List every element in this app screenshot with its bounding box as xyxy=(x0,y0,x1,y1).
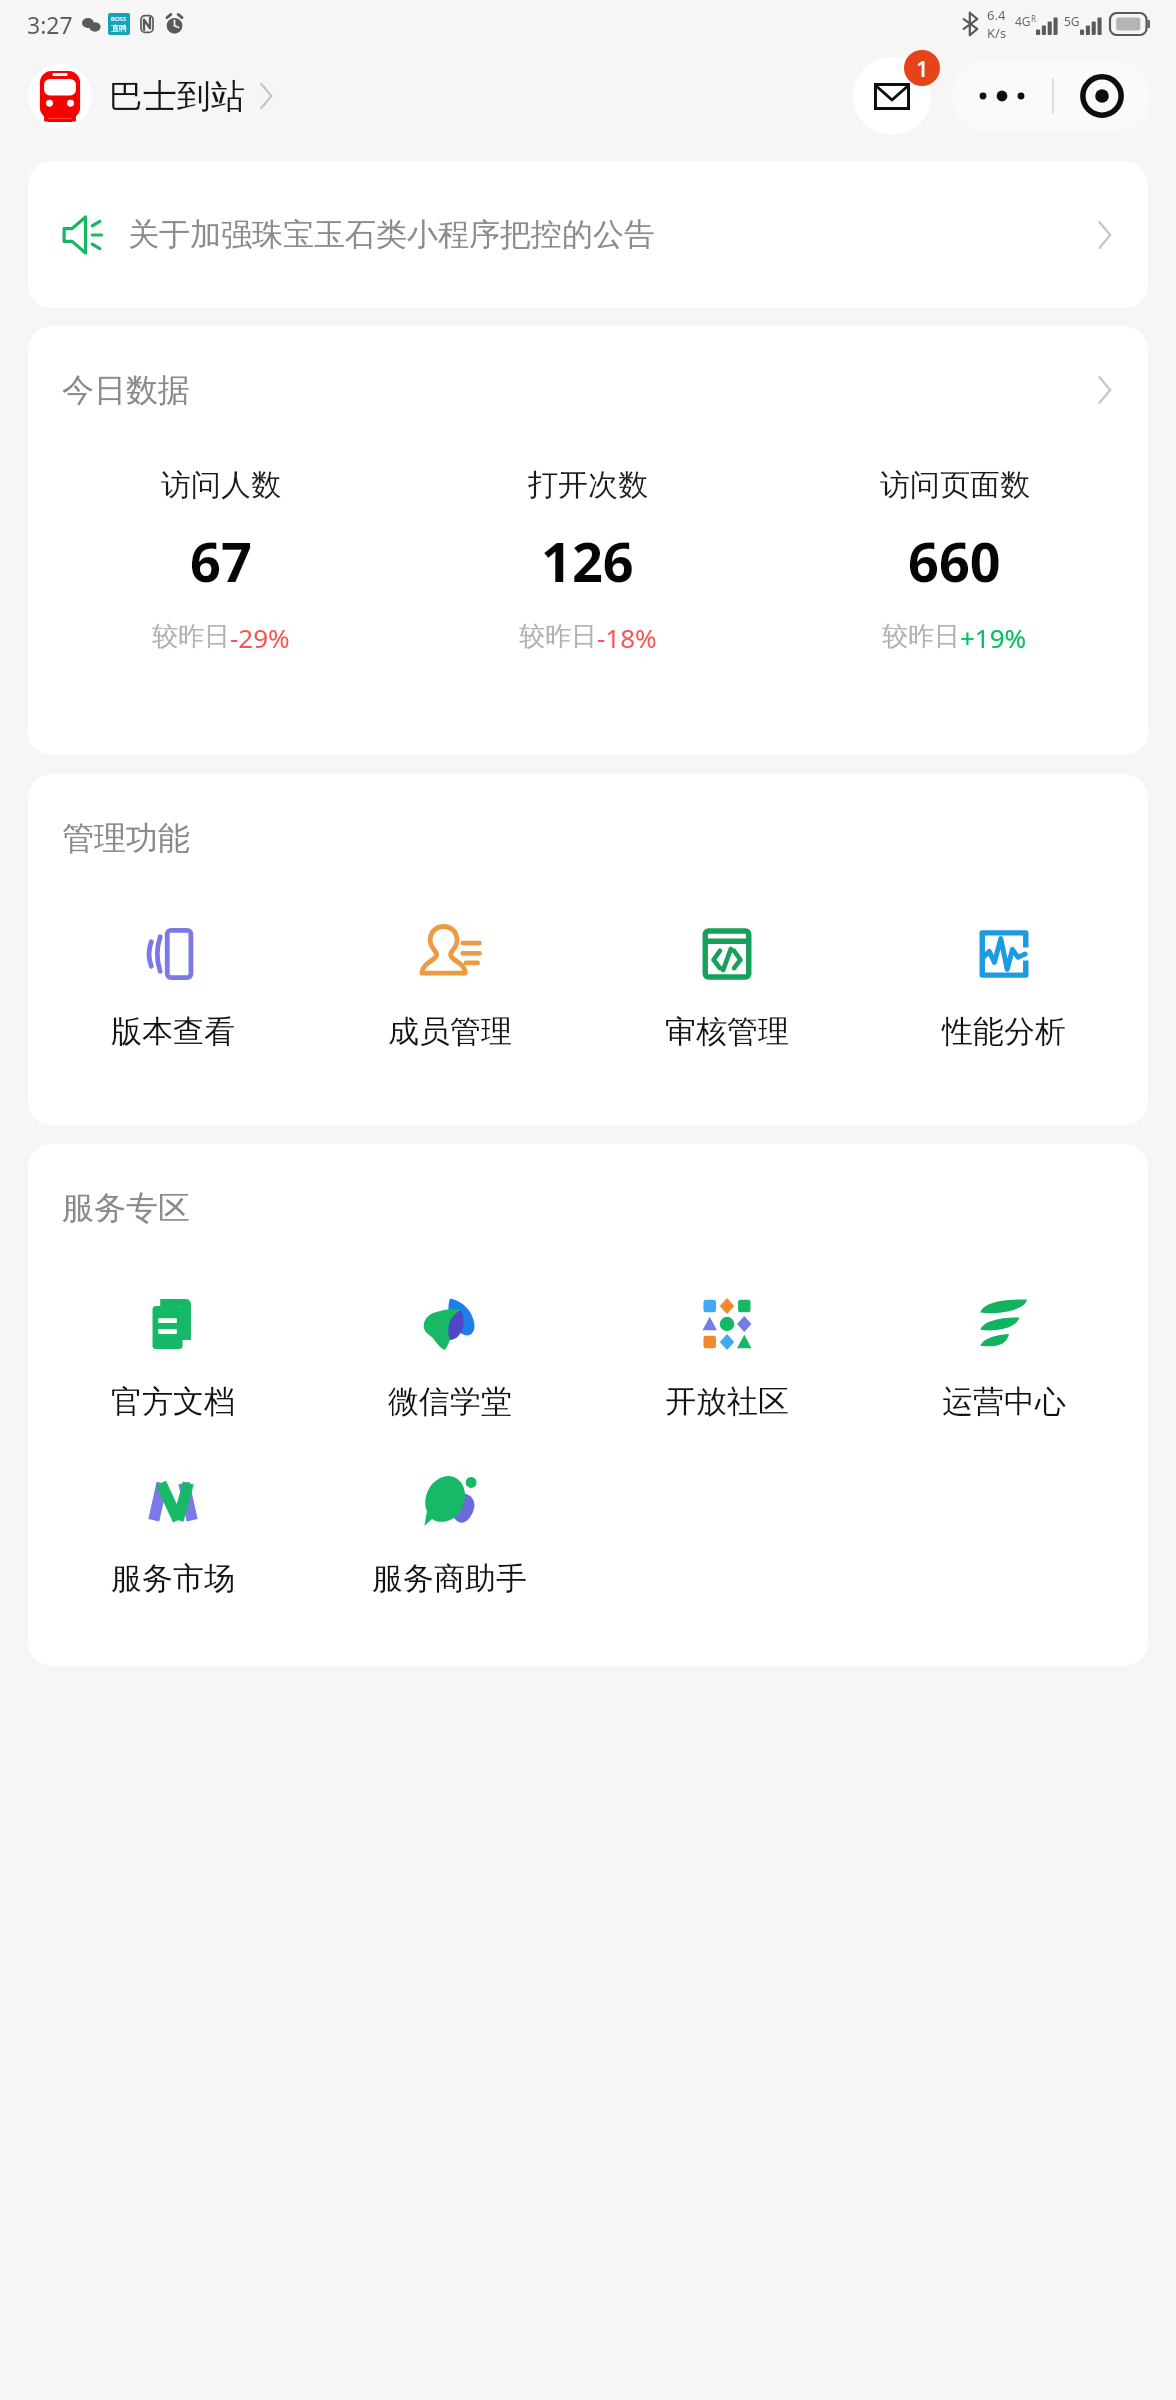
staticText: 成员管理 xyxy=(388,1012,512,1051)
staticText: 直聘 xyxy=(111,23,127,33)
button[interactable]: 性能分析 xyxy=(865,918,1142,1055)
staticText: +19% xyxy=(960,620,1027,655)
button[interactable]: 运营中心 xyxy=(865,1288,1142,1425)
staticText: 3:27 xyxy=(27,9,73,40)
staticText: 巴士到站 xyxy=(109,75,245,118)
staticText: 较昨日 xyxy=(519,620,597,653)
button[interactable]: 访问页面数 xyxy=(771,466,1138,655)
staticText: -18% xyxy=(597,620,657,655)
staticText: 关于加强珠宝玉石类小程序把控的公告 xyxy=(128,215,655,254)
staticText: K/s xyxy=(987,24,1007,42)
staticText: 660 xyxy=(908,524,1001,598)
staticText: 6.4 xyxy=(987,6,1006,24)
button[interactable]: 官方文档 xyxy=(34,1288,311,1425)
staticText: 审核管理 xyxy=(665,1012,789,1051)
staticText: 打开次数 xyxy=(528,466,648,504)
button[interactable]: 微信学堂 xyxy=(311,1288,588,1425)
staticText: 访问人数 xyxy=(161,466,281,504)
button[interactable]: 打开次数 xyxy=(404,466,771,655)
staticText: 126 xyxy=(541,524,634,598)
staticText: 67 xyxy=(190,524,252,598)
staticText: BOSS xyxy=(111,15,127,23)
staticText: 较昨日 xyxy=(882,620,960,653)
staticText: 性能分析 xyxy=(942,1012,1066,1051)
staticText: 今日数据 xyxy=(62,370,190,410)
staticText: 官方文档 xyxy=(111,1382,235,1421)
staticText: 5G xyxy=(1064,13,1080,29)
button[interactable]: 开放社区 xyxy=(588,1288,865,1425)
staticText: 微信学堂 xyxy=(388,1382,512,1421)
staticText: -29% xyxy=(230,620,290,655)
button[interactable]: Close mini program xyxy=(1054,61,1150,131)
staticText: 管理功能 xyxy=(62,818,190,858)
button[interactable]: 今日数据 xyxy=(28,326,1148,422)
staticText: 服务专区 xyxy=(62,1188,190,1228)
staticText: 服务商助手 xyxy=(372,1559,527,1598)
button[interactable]: More options xyxy=(952,61,1052,131)
staticText: 开放社区 xyxy=(665,1382,789,1421)
staticText: 4G xyxy=(1015,13,1031,29)
button[interactable]: 关于加强珠宝玉石类小程序把控的公告 xyxy=(28,161,1148,308)
staticText: 较昨日 xyxy=(152,620,230,653)
staticText: 版本查看 xyxy=(111,1012,235,1051)
button[interactable]: 服务市场 xyxy=(34,1465,311,1602)
staticText: 访问页面数 xyxy=(880,466,1030,504)
button[interactable]: 成员管理 xyxy=(311,918,588,1055)
button[interactable]: 版本查看 xyxy=(34,918,311,1055)
staticText: R xyxy=(1031,13,1036,24)
staticText: 1 xyxy=(916,53,929,83)
button[interactable]: 服务商助手 xyxy=(311,1465,588,1602)
button[interactable]: 审核管理 xyxy=(588,918,865,1055)
staticText: 运营中心 xyxy=(942,1382,1066,1421)
button[interactable]: 巴士到站 xyxy=(26,60,277,132)
button[interactable]: Messages xyxy=(844,50,940,142)
staticText: 服务市场 xyxy=(111,1559,235,1598)
button[interactable]: 访问人数 xyxy=(38,466,404,655)
